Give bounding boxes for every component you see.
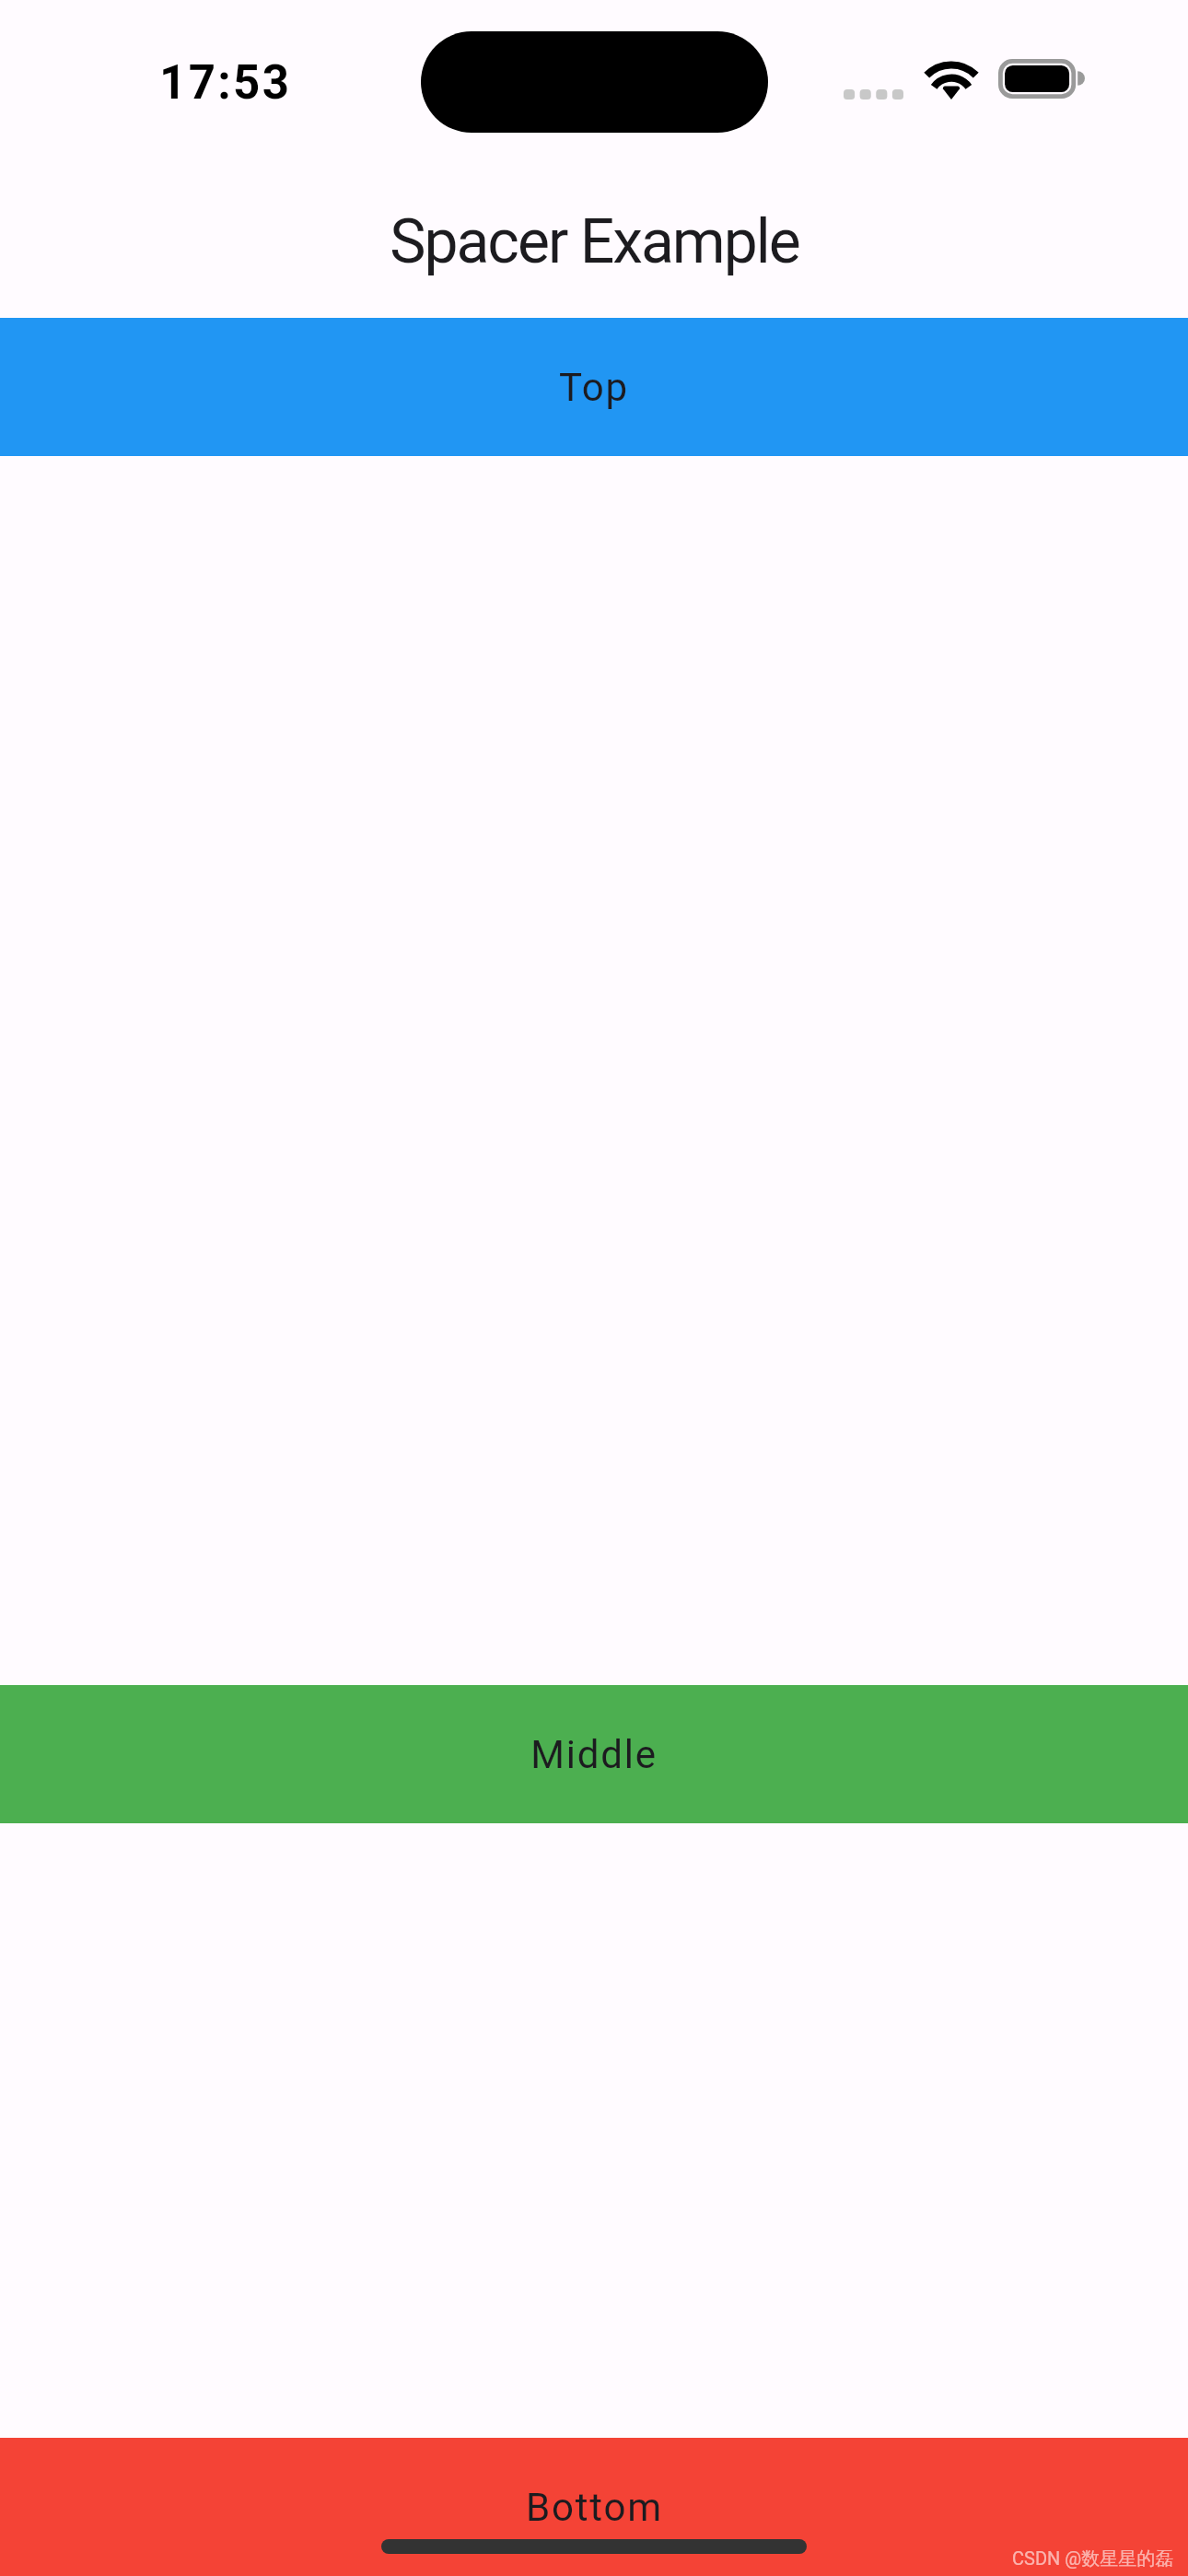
staticText: Middle	[530, 1732, 658, 1777]
staticText: 17:53	[159, 55, 292, 111]
staticText: Top	[559, 365, 629, 410]
button[interactable]: Top	[0, 318, 1188, 456]
staticText: Bottom	[526, 2485, 663, 2530]
button[interactable]: Middle	[0, 1685, 1188, 1823]
button[interactable]: Bottom	[0, 2438, 1188, 2576]
staticText: Spacer Example	[390, 206, 799, 277]
other: Wi-Fi	[925, 60, 978, 100]
staticText: CSDN @数星星的磊	[1012, 2547, 1174, 2570]
other: Battery	[998, 59, 1083, 99]
other: Cellular signal	[844, 89, 903, 100]
